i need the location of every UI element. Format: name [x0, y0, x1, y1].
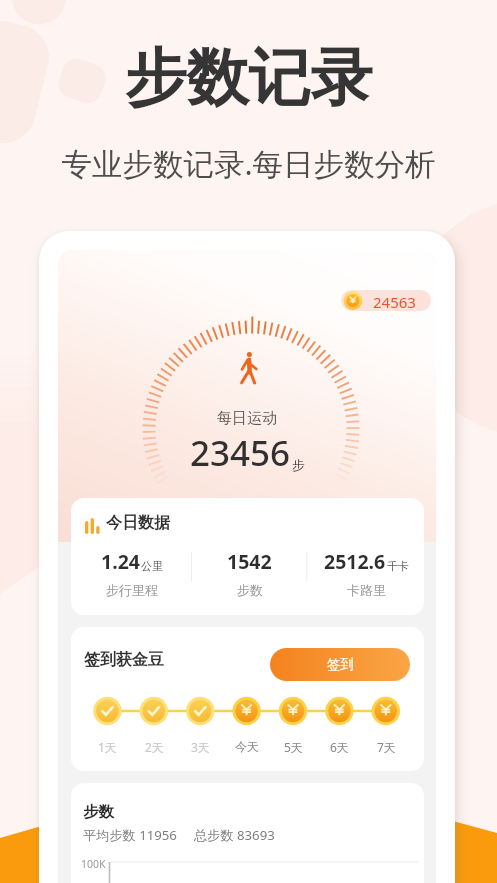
staticText: 步: [292, 457, 305, 473]
staticText: 今日数据: [106, 513, 170, 533]
staticText: 步数: [237, 582, 263, 598]
staticText: 步数: [83, 802, 114, 822]
staticText: 公里: [141, 559, 163, 573]
staticText: 步行里程: [106, 582, 158, 598]
staticText: 步数记录: [0, 39, 497, 117]
staticText: 千卡: [387, 559, 409, 573]
staticText: 2512.6: [324, 548, 386, 575]
staticText: 3天: [191, 739, 210, 755]
staticText: 7天: [377, 739, 396, 755]
staticText: 5天: [284, 739, 303, 755]
staticText: 签到获金豆: [84, 650, 164, 670]
button[interactable]: 签到: [270, 648, 410, 681]
staticText: 签到: [327, 656, 354, 673]
staticText: 平均步数 11956 总步数 83693: [83, 826, 275, 844]
staticText: 今天: [235, 739, 259, 754]
staticText: 6天: [330, 739, 349, 755]
staticText: 卡路里: [347, 582, 386, 598]
button[interactable]: 今日数据: [71, 498, 424, 615]
staticText: 1.24: [101, 548, 140, 575]
staticText: 专业步数记录.每日步数分析: [0, 142, 497, 184]
staticText: 100K: [81, 857, 106, 871]
staticText: 1542: [227, 548, 272, 575]
staticText: 2天: [145, 739, 164, 755]
button[interactable]: Coins 24563: [341, 290, 431, 311]
staticText: 23456: [190, 429, 291, 477]
staticText: 每日运动: [58, 409, 436, 428]
staticText: 1天: [98, 739, 117, 755]
staticText: 24563: [373, 292, 416, 311]
